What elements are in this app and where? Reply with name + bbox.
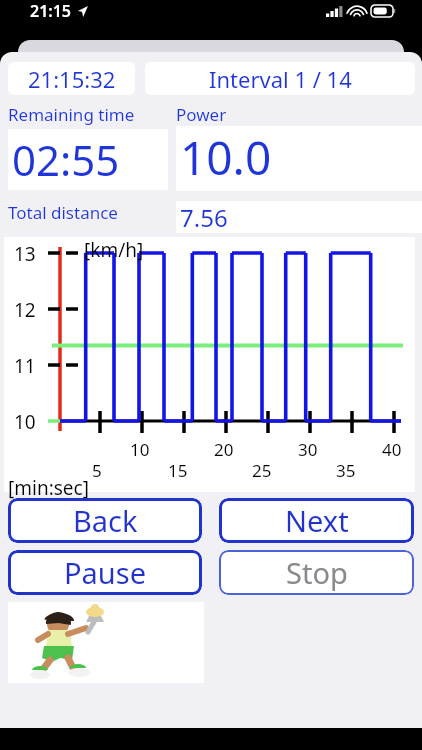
staticText: Remaining time bbox=[8, 103, 135, 126]
staticText: 10 bbox=[14, 409, 36, 435]
staticText: 10 bbox=[130, 438, 150, 461]
staticText: Power bbox=[176, 103, 227, 126]
staticText: 10.0 bbox=[180, 126, 272, 189]
staticText: 30 bbox=[298, 438, 318, 461]
staticText: Next bbox=[285, 501, 349, 540]
staticText: 25 bbox=[252, 459, 272, 482]
staticText: Stop bbox=[286, 553, 348, 592]
button[interactable]: Pause bbox=[8, 550, 202, 595]
button[interactable]: Stop bbox=[219, 550, 414, 595]
staticText: 35 bbox=[336, 459, 356, 482]
staticText: 21:15 bbox=[30, 0, 72, 22]
staticText: 21:15:32 bbox=[28, 64, 116, 94]
staticText: 5 bbox=[92, 459, 102, 482]
button[interactable]: 21:15:32 bbox=[8, 62, 135, 95]
staticText: 12 bbox=[14, 297, 36, 323]
staticText: [km/h] bbox=[84, 237, 144, 263]
button[interactable]: Interval 1 / 14 bbox=[145, 62, 415, 95]
staticText: 15 bbox=[168, 459, 188, 482]
staticText: 7.56 bbox=[180, 201, 228, 233]
button[interactable]: Next bbox=[219, 498, 414, 543]
staticText: 11 bbox=[14, 353, 36, 379]
staticText: 13 bbox=[14, 241, 36, 267]
staticText: [min:sec] bbox=[8, 475, 89, 501]
staticText: Back bbox=[73, 501, 138, 540]
staticText: Pause bbox=[64, 553, 146, 592]
staticText: 02:55 bbox=[12, 131, 120, 188]
staticText: Total distance bbox=[8, 201, 118, 224]
button[interactable]: Back bbox=[8, 498, 202, 543]
staticText: Interval 1 / 14 bbox=[209, 64, 352, 94]
staticText: 20 bbox=[214, 438, 234, 461]
staticText: 40 bbox=[382, 438, 402, 461]
